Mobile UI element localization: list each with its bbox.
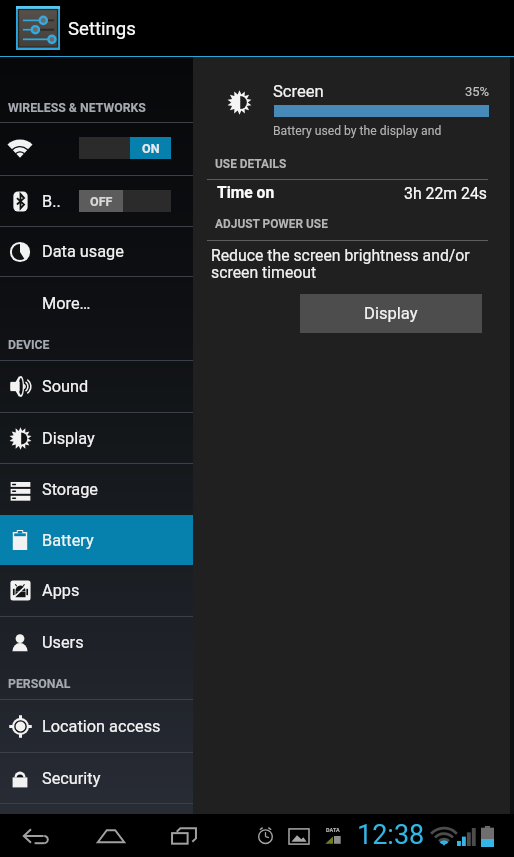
button[interactable]: Display <box>300 294 482 333</box>
staticText: ON <box>142 141 160 156</box>
button[interactable]: Back <box>14 814 60 857</box>
staticText: B.. <box>42 192 61 211</box>
staticText: Display <box>364 304 418 323</box>
staticText: Sound <box>42 377 89 396</box>
staticText: Users <box>42 633 84 652</box>
button[interactable]: Users <box>0 617 193 668</box>
staticText: More… <box>42 294 91 313</box>
button[interactable]: B.. <box>0 176 193 226</box>
button[interactable]: More… <box>0 277 193 329</box>
button[interactable]: Storage <box>0 464 193 515</box>
button[interactable]: Settings <box>16 6 60 50</box>
staticText: Time on <box>217 184 275 202</box>
staticText: Settings <box>68 18 136 40</box>
staticText: 35% <box>465 84 490 99</box>
staticText: Security <box>42 769 101 788</box>
button[interactable]: Display <box>0 413 193 463</box>
staticText: 12:38 <box>357 819 425 851</box>
button[interactable]: Apps <box>0 565 193 616</box>
staticText: USE DETAILS <box>215 157 287 171</box>
button[interactable]: Data usage <box>0 227 193 276</box>
staticText: Data usage <box>42 242 124 261</box>
button[interactable]: ON <box>0 123 193 175</box>
button[interactable]: Recent apps <box>161 814 207 857</box>
staticText: ADJUST POWER USE <box>215 217 328 231</box>
button[interactable]: Battery <box>0 515 193 565</box>
staticText: WIRELESS & NETWORKS <box>8 101 146 115</box>
staticText: Screen <box>273 82 324 101</box>
staticText: Location access <box>42 717 161 736</box>
button[interactable]: Security <box>0 753 193 804</box>
staticText: 3h 22m 24s <box>404 184 487 203</box>
button[interactable]: Location access <box>0 700 193 752</box>
staticText: DEVICE <box>8 338 50 352</box>
button[interactable]: Sound <box>0 361 193 412</box>
staticText: Display <box>42 429 95 448</box>
staticText: PERSONAL <box>8 677 71 691</box>
staticText: Storage <box>42 480 99 499</box>
staticText: Battery <box>42 531 94 550</box>
staticText: Battery used by the display and <box>273 124 442 138</box>
button[interactable]: OFF <box>79 190 171 212</box>
button[interactable]: Home <box>88 814 134 857</box>
staticText: OFF <box>90 194 113 209</box>
button[interactable]: ON <box>79 137 171 159</box>
staticText: Apps <box>42 581 80 600</box>
staticText: DATA <box>326 827 340 833</box>
staticText: Reduce the screen brightness and/or scre… <box>211 246 470 282</box>
